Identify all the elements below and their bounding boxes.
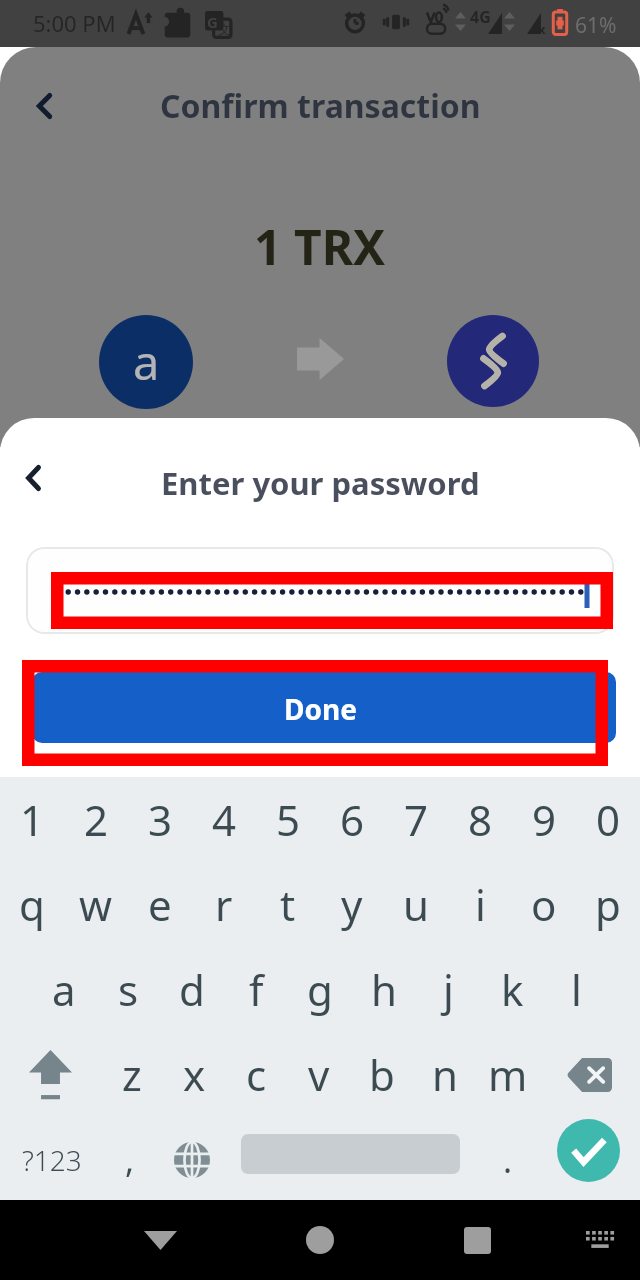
button[interactable]: i xyxy=(448,862,512,947)
staticText: v xyxy=(308,1046,330,1103)
staticText: 1 xyxy=(20,791,45,848)
button[interactable]: x xyxy=(163,1032,225,1117)
staticText: e xyxy=(148,876,172,933)
button[interactable]: Back xyxy=(18,80,70,132)
button[interactable] xyxy=(26,547,614,634)
button[interactable]: n xyxy=(413,1032,476,1117)
staticText: a xyxy=(52,961,76,1018)
staticText: 7 xyxy=(404,791,429,848)
button[interactable]: Back xyxy=(7,452,59,504)
button[interactable] xyxy=(447,315,539,407)
button[interactable]: Recents xyxy=(449,1212,505,1268)
button[interactable]: m xyxy=(476,1032,539,1117)
button[interactable]: 6 xyxy=(320,777,384,862)
button[interactable]: e xyxy=(128,862,192,947)
button[interactable]: 5 xyxy=(256,777,320,862)
button[interactable] xyxy=(32,672,616,743)
staticText: s xyxy=(118,961,139,1018)
button[interactable]: b xyxy=(350,1032,413,1117)
staticText: j xyxy=(443,961,454,1018)
staticText: p xyxy=(595,876,621,933)
button[interactable]: a xyxy=(99,315,193,409)
button[interactable]: 1 xyxy=(0,777,64,862)
button[interactable]: h xyxy=(352,947,416,1032)
staticText: c xyxy=(246,1046,267,1103)
button[interactable]: , xyxy=(98,1117,162,1202)
button[interactable]: g xyxy=(288,947,352,1032)
staticText: 5 xyxy=(276,791,301,848)
button[interactable]: w xyxy=(64,862,128,947)
button[interactable]: o xyxy=(512,862,576,947)
button[interactable]: Switch keyboard xyxy=(572,1212,628,1268)
button[interactable]: j xyxy=(416,947,480,1032)
staticText: o xyxy=(531,876,557,933)
button[interactable]: Backspace xyxy=(539,1032,640,1117)
staticText: 8 xyxy=(468,791,493,848)
button[interactable]: a xyxy=(32,947,96,1032)
staticText: k xyxy=(501,961,524,1018)
staticText: 1 TRX xyxy=(254,214,386,279)
staticText: f xyxy=(249,961,264,1018)
staticText: n xyxy=(432,1046,458,1103)
button[interactable]: 2 xyxy=(64,777,128,862)
button[interactable]: 0 xyxy=(576,777,640,862)
button[interactable]: t xyxy=(256,862,320,947)
button[interactable]: u xyxy=(384,862,448,947)
button[interactable]: d xyxy=(160,947,224,1032)
staticText: 4G xyxy=(470,6,491,28)
button[interactable]: z xyxy=(101,1032,163,1117)
staticText: 9 xyxy=(532,791,557,848)
button[interactable]: 8 xyxy=(448,777,512,862)
staticText: Confirm transaction xyxy=(160,84,481,128)
button[interactable]: s xyxy=(96,947,160,1032)
staticText: x xyxy=(183,1046,206,1103)
button[interactable]: 3 xyxy=(128,777,192,862)
button[interactable]: 7 xyxy=(384,777,448,862)
button[interactable]: 9 xyxy=(512,777,576,862)
staticText: w xyxy=(79,876,113,933)
button[interactable]: l xyxy=(544,947,608,1032)
staticText: u xyxy=(403,876,429,933)
button[interactable]: r xyxy=(192,862,256,947)
button[interactable]: Enter xyxy=(557,1119,620,1182)
staticText: y xyxy=(341,876,363,933)
button[interactable]: Home xyxy=(292,1212,348,1268)
button[interactable]: c xyxy=(225,1032,287,1117)
staticText: l xyxy=(571,961,582,1018)
button[interactable]: 4 xyxy=(192,777,256,862)
staticText: , xyxy=(125,1137,135,1183)
button[interactable]: k xyxy=(480,947,544,1032)
staticText: d xyxy=(179,961,205,1018)
staticText: 6 xyxy=(340,791,365,848)
staticText: x xyxy=(538,20,546,38)
button[interactable]: f xyxy=(224,947,288,1032)
staticText: Enter your password xyxy=(161,462,480,504)
staticText: h xyxy=(371,961,397,1018)
staticText: 4 xyxy=(212,791,237,848)
staticText: m xyxy=(488,1046,528,1103)
staticText: r xyxy=(215,876,233,933)
staticText: a xyxy=(133,330,160,394)
button[interactable]: v xyxy=(287,1032,350,1117)
button[interactable]: q xyxy=(0,862,64,947)
staticText: ?123 xyxy=(22,1141,82,1179)
staticText: 文 xyxy=(218,21,231,37)
staticText: g xyxy=(307,961,333,1018)
staticText: 0 xyxy=(596,791,621,848)
staticText: G xyxy=(207,12,218,32)
button[interactable]: Change language xyxy=(160,1117,224,1202)
button[interactable]: . xyxy=(476,1117,540,1202)
staticText: q xyxy=(19,876,45,933)
button[interactable]: Shift xyxy=(0,1032,101,1117)
staticText: z xyxy=(122,1046,142,1103)
staticText: 5:00 PM xyxy=(33,8,116,38)
staticText: Done xyxy=(284,690,357,728)
button[interactable]: y xyxy=(320,862,384,947)
staticText: b xyxy=(369,1046,395,1103)
staticText: 61% xyxy=(575,11,617,40)
button[interactable]: Back xyxy=(132,1214,188,1266)
button[interactable]: ?123 xyxy=(0,1117,103,1202)
staticText: 3 xyxy=(148,791,173,848)
button[interactable]: p xyxy=(576,862,640,947)
